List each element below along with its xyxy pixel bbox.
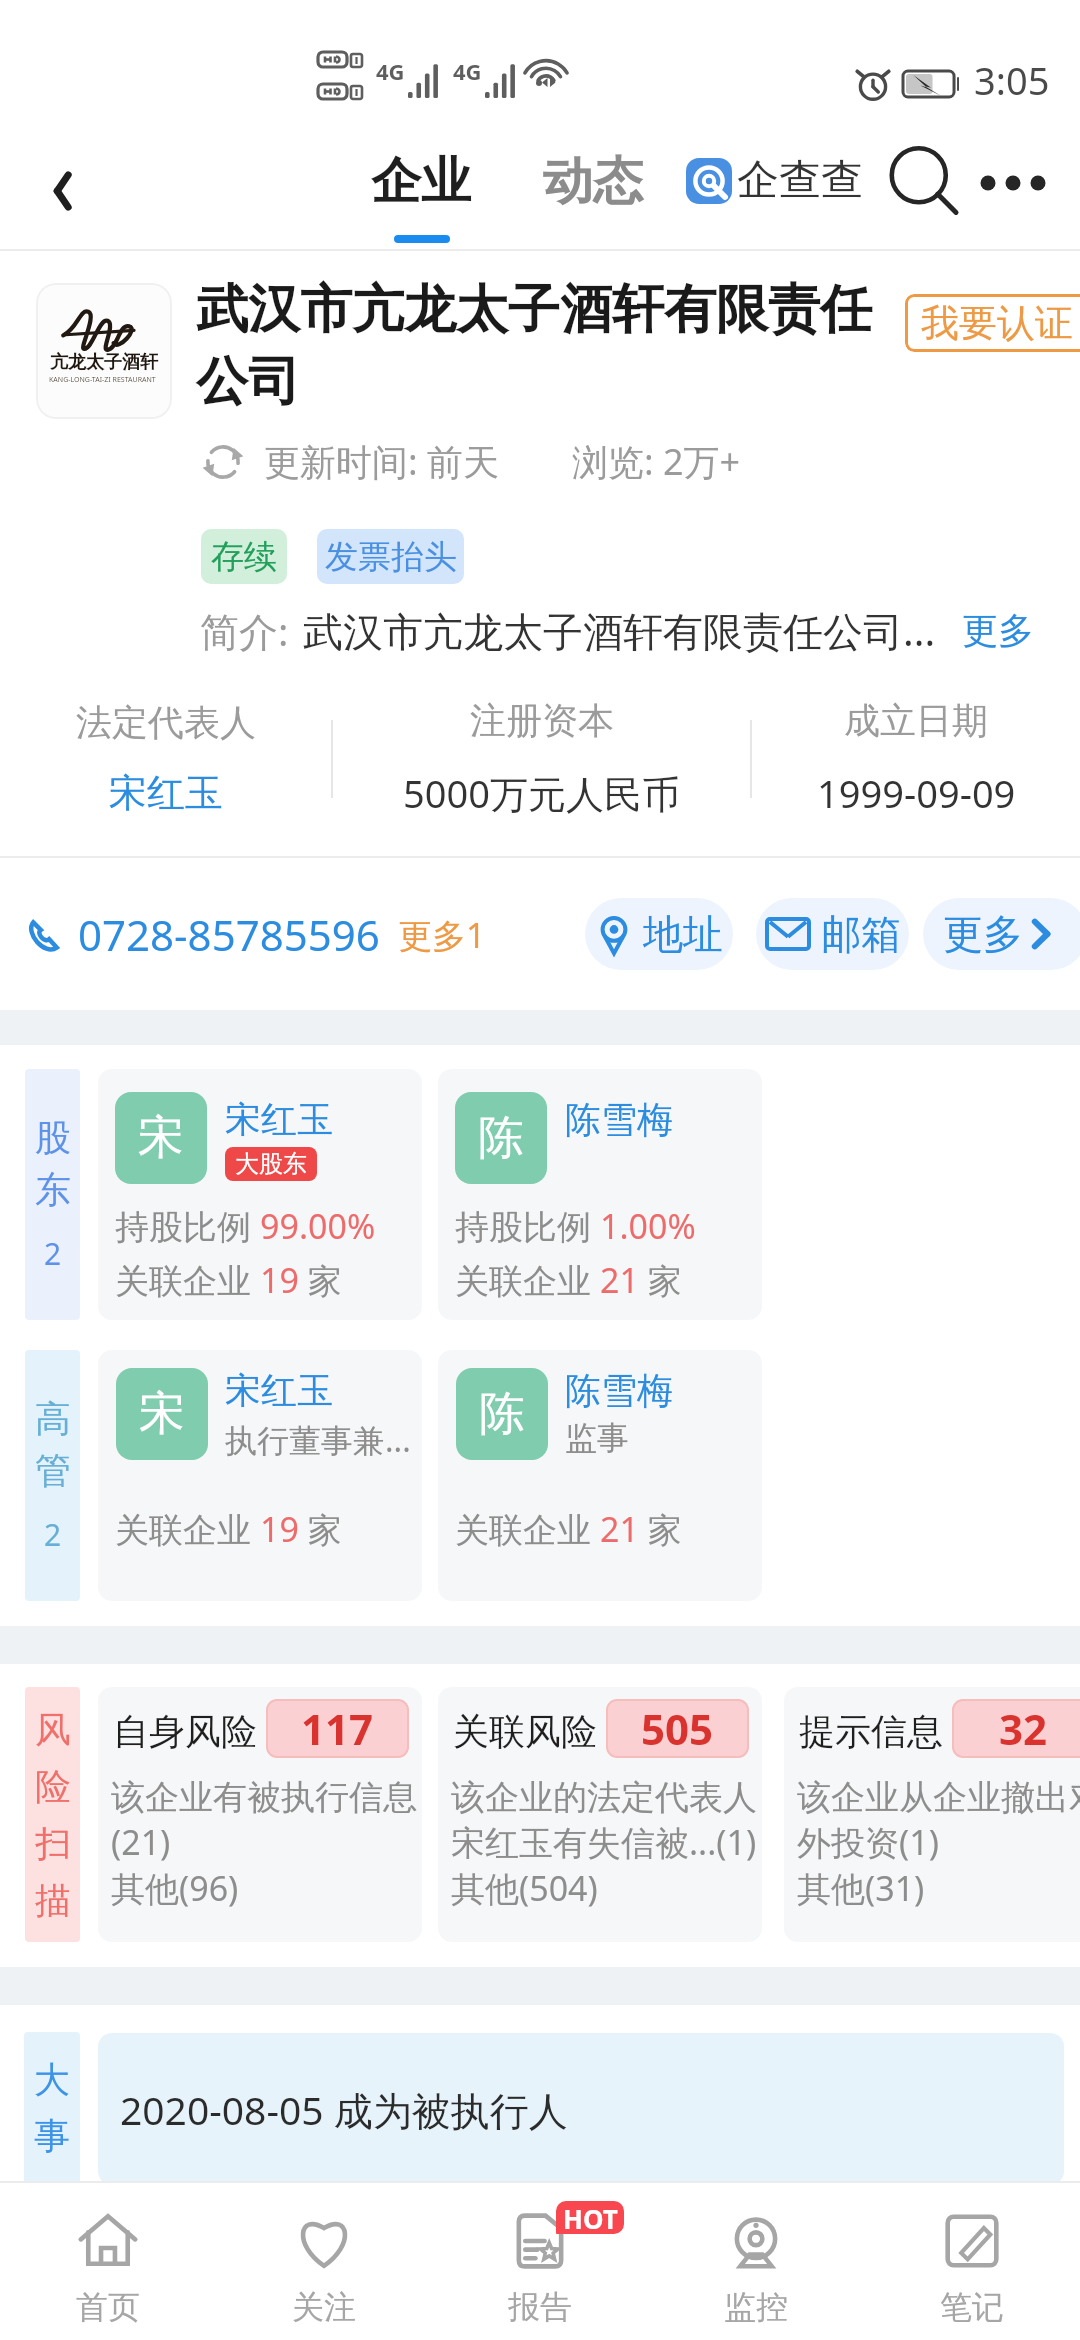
- staticText: 企查查: [737, 154, 863, 207]
- staticText: 提示信息: [799, 1709, 943, 1754]
- staticText: 高管: [33, 1396, 73, 1494]
- button[interactable]: HOT: [432, 2199, 648, 2340]
- staticText: 监事: [565, 1418, 629, 1458]
- staticText: 其他(31): [797, 1865, 925, 1911]
- staticText: 发票抬头: [325, 536, 457, 578]
- staticText: 家: [639, 1257, 682, 1303]
- staticText: 自身风险: [113, 1709, 257, 1754]
- staticText: 关联企业: [115, 1506, 260, 1552]
- staticText: 2020-08-05 成为被执行人: [120, 2083, 568, 2136]
- staticText: KANG-LONG-TAI-ZI RESTAURANT: [49, 375, 167, 385]
- staticText: 关联企业: [455, 1257, 600, 1303]
- staticText: 4G: [376, 56, 405, 86]
- staticText: 持股比例: [115, 1203, 260, 1249]
- staticText: 21: [600, 1506, 639, 1552]
- staticText: 更多: [962, 608, 1034, 653]
- button[interactable]: 关注: [216, 2199, 432, 2340]
- staticText: 陈雪梅: [565, 1368, 673, 1413]
- staticText: 关联风险: [453, 1709, 597, 1754]
- button[interactable]: 我要认证: [905, 294, 1080, 352]
- staticText: 首页: [76, 2287, 140, 2327]
- staticText: 陈: [479, 1385, 525, 1443]
- staticText: 更新时间: 前天: [264, 437, 500, 486]
- button[interactable]: 2020-08-05 成为被执行人: [98, 2033, 1064, 2185]
- staticText: 笔记: [940, 2287, 1004, 2327]
- staticText: 大事: [32, 2057, 72, 2159]
- staticText: 存续: [211, 536, 277, 578]
- staticText: 地址: [643, 909, 723, 959]
- button[interactable]: 陈: [438, 1350, 762, 1601]
- staticText: 执行董事兼...: [225, 1418, 411, 1462]
- button[interactable]: Search: [880, 138, 970, 228]
- button[interactable]: 提示信息: [784, 1687, 1080, 1942]
- staticText: 风险扫描: [33, 1707, 73, 1923]
- staticText: 32: [999, 1700, 1048, 1757]
- staticText: 2: [44, 1514, 62, 1555]
- button[interactable]: 地址: [585, 898, 733, 970]
- staticText: 宋红玉: [225, 1097, 333, 1142]
- staticText: 关联企业: [455, 1506, 600, 1552]
- button[interactable]: 笔记: [864, 2199, 1080, 2340]
- staticText: 宋: [138, 1109, 184, 1167]
- staticText: 505: [641, 1700, 714, 1757]
- staticText: 家: [639, 1506, 682, 1552]
- staticText: 关联企业: [115, 1257, 260, 1303]
- button[interactable]: 存续: [201, 529, 287, 584]
- staticText: 3:05: [974, 54, 1050, 106]
- staticText: 4G: [453, 56, 482, 86]
- staticText: 报告: [508, 2287, 572, 2327]
- staticText: 其他(504): [451, 1865, 598, 1911]
- staticText: 股东: [33, 1115, 73, 1213]
- button[interactable]: Back: [20, 148, 106, 234]
- button[interactable]: More options: [968, 138, 1058, 228]
- button[interactable]: 企查查: [686, 154, 863, 207]
- staticText: 武汉市亢龙太子酒轩有限责任公司...: [303, 603, 936, 658]
- staticText: 该企业的法定代表人: [451, 1776, 757, 1819]
- staticText: 持股比例: [455, 1203, 600, 1249]
- button[interactable]: 宋: [98, 1350, 422, 1601]
- staticText: 简介:: [200, 604, 289, 657]
- button[interactable]: Company logo: [36, 283, 172, 419]
- button[interactable]: 邮箱: [756, 898, 909, 970]
- staticText: 其他(96): [111, 1865, 239, 1911]
- button[interactable]: 更多: [962, 608, 1034, 653]
- staticText: 1.00%: [600, 1203, 696, 1249]
- staticText: 该企业有被执行信息: [111, 1776, 417, 1819]
- button[interactable]: 更多: [923, 898, 1080, 970]
- staticText: 成立日期: [844, 698, 988, 743]
- staticText: 陈雪梅: [565, 1097, 673, 1142]
- staticText: 法定代表人: [76, 700, 256, 745]
- staticText: 99.00%: [260, 1203, 376, 1249]
- staticText: 更多1: [398, 912, 486, 958]
- staticText: 陈: [478, 1109, 524, 1167]
- staticText: 监控: [724, 2287, 788, 2327]
- button[interactable]: 陈: [438, 1069, 762, 1320]
- button[interactable]: 动态: [543, 150, 643, 213]
- staticText: 关注: [292, 2287, 356, 2327]
- staticText: 21: [600, 1257, 639, 1303]
- staticText: 邮箱: [821, 909, 901, 959]
- button[interactable]: 监控: [648, 2199, 864, 2340]
- button[interactable]: 0728-85785596: [24, 906, 486, 963]
- staticText: 117: [301, 1700, 374, 1757]
- staticText: 宋红玉有失信被...(1): [451, 1819, 757, 1865]
- staticText: 家: [299, 1506, 342, 1552]
- staticText: 武汉市亢龙太子酒轩有限责任公司: [196, 277, 876, 414]
- staticText: (21): [111, 1819, 171, 1865]
- staticText: 宋红玉: [225, 1368, 333, 1413]
- staticText: 0728-85785596: [78, 906, 380, 963]
- button[interactable]: 企业: [371, 150, 471, 213]
- staticText: 企业: [371, 150, 471, 213]
- button[interactable]: 发票抬头: [317, 529, 464, 584]
- button[interactable]: 宋: [98, 1069, 422, 1320]
- staticText: 19: [260, 1506, 299, 1552]
- button[interactable]: 关联风险: [438, 1687, 762, 1942]
- staticText: 宋红玉: [109, 769, 223, 817]
- staticText: 注册资本: [470, 698, 614, 743]
- button[interactable]: 自身风险: [98, 1687, 422, 1942]
- staticText: 该企业从企业撤出对: [797, 1776, 1080, 1819]
- staticText: 我要认证: [921, 299, 1073, 347]
- button[interactable]: 首页: [0, 2199, 216, 2340]
- staticText: 宋: [139, 1385, 185, 1443]
- staticText: 19: [260, 1257, 299, 1303]
